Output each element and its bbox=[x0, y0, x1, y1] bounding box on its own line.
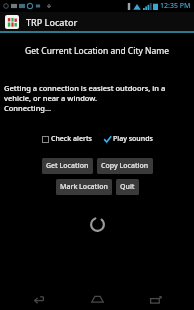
staticText: TRP Locator bbox=[26, 16, 78, 28]
staticText: Getting a connection is easiest outdoors… bbox=[4, 83, 190, 103]
staticText: Get Location bbox=[46, 161, 89, 171]
button[interactable]: Quit bbox=[116, 179, 139, 195]
staticText: Connecting... bbox=[4, 103, 52, 113]
staticText: Get Current Location and City Name bbox=[0, 45, 194, 57]
staticText: 12:35 PM bbox=[160, 1, 191, 11]
button[interactable]: Recents bbox=[136, 288, 176, 310]
button[interactable]: Play sounds bbox=[103, 133, 154, 145]
staticText: Copy Location bbox=[101, 161, 149, 171]
button[interactable]: Copy Location bbox=[97, 158, 153, 174]
button[interactable]: Home bbox=[77, 288, 117, 310]
staticText: Mark Location bbox=[60, 182, 108, 192]
button[interactable]: Mark Location bbox=[56, 179, 112, 195]
staticText: Check alerts bbox=[51, 134, 92, 144]
staticText: Quit bbox=[120, 182, 135, 192]
button[interactable]: Check alerts bbox=[41, 133, 93, 145]
button[interactable]: Back bbox=[19, 288, 59, 310]
staticText: Play sounds bbox=[113, 134, 153, 144]
button[interactable]: Get Location bbox=[42, 158, 93, 174]
